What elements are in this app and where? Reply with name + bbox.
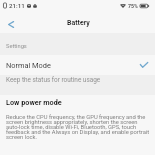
staticText: 75% [128, 3, 138, 9]
staticText: Battery [67, 19, 90, 27]
staticText: Settings [6, 43, 27, 50]
staticText: Reduce the CPU frequency, the GPU freque… [6, 114, 150, 141]
staticText: 21:11 [9, 2, 25, 9]
button[interactable]: Back [2, 15, 20, 33]
staticText: Low power mode [6, 98, 62, 107]
button[interactable]: Normal Mode [0, 55, 155, 75]
staticText: Normal Mode [6, 61, 51, 70]
staticText: Keep the status for routine usage [6, 76, 101, 84]
